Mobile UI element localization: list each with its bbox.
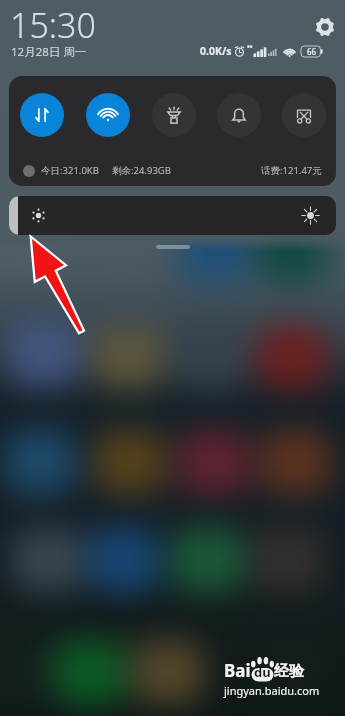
button[interactable]: Screenshot xyxy=(282,93,326,137)
staticText: 今日:321.0KB xyxy=(41,164,99,177)
button[interactable]: Wi-Fi xyxy=(86,93,130,137)
staticText: du xyxy=(254,663,271,681)
staticText: 经验 xyxy=(274,662,304,681)
staticText: 66 xyxy=(307,46,317,57)
staticText: 0.0K/s xyxy=(200,44,232,58)
staticText: 12月28日 周一 xyxy=(11,44,87,60)
button[interactable]: Settings xyxy=(314,16,336,38)
staticText: 15:30 xyxy=(10,2,96,48)
staticText: 剩余:24.93GB xyxy=(112,164,171,177)
staticText: 话费:121.47元 xyxy=(261,164,322,177)
button[interactable]: Brightness xyxy=(9,196,336,235)
staticText: Bai xyxy=(224,659,251,682)
button[interactable]: 今日:321.0KB xyxy=(23,155,322,186)
button[interactable]: Mobile data xyxy=(20,93,64,137)
button[interactable]: Flashlight xyxy=(152,93,196,137)
staticText: jingyan.baidu.com xyxy=(224,683,320,698)
button[interactable]: Do not disturb xyxy=(217,93,261,137)
